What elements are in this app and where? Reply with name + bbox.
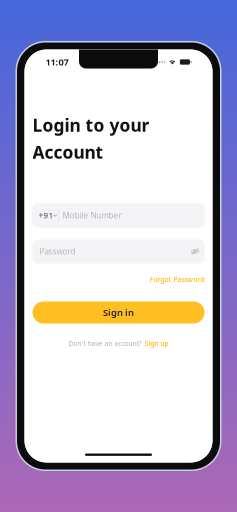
staticText: Sign up <box>144 339 168 348</box>
staticText: Forgot Password <box>149 275 204 284</box>
staticText: Don't have an account? <box>68 339 141 348</box>
button[interactable]: Sign in <box>32 301 204 323</box>
button[interactable]: Password <box>32 239 204 263</box>
staticText: 11:07 <box>45 56 68 68</box>
staticText: Account <box>32 140 103 163</box>
staticText: Password <box>39 246 75 257</box>
staticText: Login to your <box>32 113 149 136</box>
staticText: Sign in <box>103 306 134 319</box>
button[interactable]: +91 <box>32 203 204 227</box>
button[interactable]: Forgot Password <box>32 274 204 284</box>
staticText: +91 <box>38 210 53 221</box>
button[interactable]: Sign up <box>144 339 168 348</box>
staticText: Mobile Number <box>62 210 121 221</box>
